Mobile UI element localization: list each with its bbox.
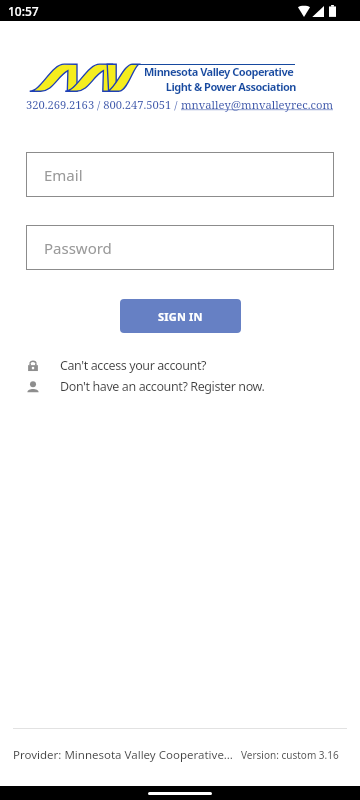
staticText: Email: [44, 165, 83, 185]
other: Register: [26, 380, 40, 394]
staticText: Light & Power Association: [144, 79, 296, 94]
other: Forgot password: [26, 359, 40, 373]
button[interactable]: Forgot password: [0, 355, 360, 376]
button[interactable]: SIGN IN: [120, 299, 241, 333]
button[interactable]: Email: [26, 152, 334, 197]
button[interactable]: mnvalley@mnvalleyrec.com: [181, 97, 334, 112]
staticText: 320.269.2163 / 800.247.5051 /: [26, 97, 181, 112]
staticText: 10:57: [8, 3, 39, 19]
staticText: Password: [44, 238, 112, 258]
staticText: Provider: Minnesota Valley Cooperative…: [13, 747, 233, 763]
staticText: Minnesota Valley Cooperative: [144, 64, 294, 79]
staticText: SIGN IN: [158, 309, 203, 324]
button[interactable]: Password: [26, 225, 334, 270]
staticText: Version: custom 3.16: [241, 748, 339, 762]
staticText: Can't access your account?: [60, 357, 207, 374]
button[interactable]: Register: [0, 376, 360, 397]
staticText: Don't have an account? Register now.: [60, 378, 265, 395]
